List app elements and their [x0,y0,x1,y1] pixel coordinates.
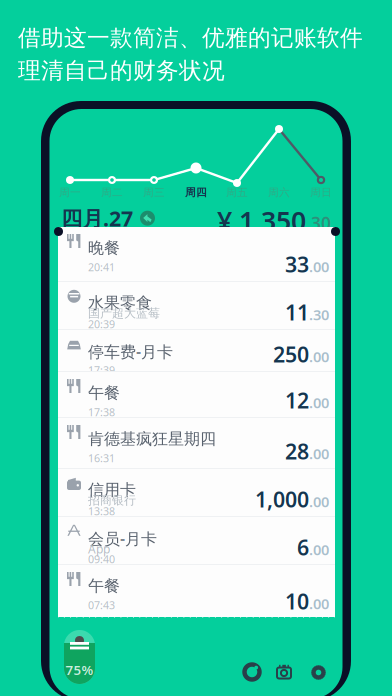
staticText: 16:31 [88,451,115,465]
button[interactable]: 四月.27 [61,204,181,232]
staticText: 75% [65,661,93,679]
staticText: 09:40 [88,552,115,566]
staticText: .00 [309,444,329,463]
staticText: 17:39 [88,363,115,377]
staticText: 信用卡 [88,480,136,500]
staticText: 20:41 [88,260,115,274]
staticText: 10 [285,587,309,615]
staticText: .00 [309,393,329,412]
staticText: 28 [285,437,309,465]
staticText: 周四 [185,186,207,199]
staticText: 理清自己的财务状况 [18,57,225,85]
staticText: 停车费-月卡 [88,341,173,362]
staticText: App [88,541,110,557]
staticText: 1,000 [255,485,309,513]
staticText: 周一 [59,186,81,199]
staticText: 晚餐 [88,238,120,258]
staticText: 招商银行 [88,493,136,508]
staticText: 周五 [226,186,248,199]
staticText: 12 [285,386,309,414]
staticText: 周日 [310,186,332,199]
staticText: 周三 [143,186,165,199]
button[interactable]: 肯德基疯狂星期四 [58,418,335,468]
staticText: .30 [309,305,329,324]
staticText: 会员-月卡 [88,528,157,549]
staticText: .00 [309,492,329,511]
staticText: ¥ 1,350 [217,203,306,238]
button[interactable]: 午餐 [58,565,335,618]
staticText: 13:38 [88,504,115,518]
button[interactable]: 午餐 [58,372,335,417]
staticText: 6 [297,533,309,561]
button[interactable]: 75% [64,630,95,684]
staticText: 07:43 [88,598,115,612]
staticText: .00 [309,594,329,613]
staticText: .00 [309,347,329,366]
staticText: 肯德基疯狂星期四 [88,429,216,449]
button[interactable]: Camera [277,664,293,680]
staticText: 周二 [101,186,123,199]
staticText: 250 [273,340,309,368]
staticText: 20:39 [88,317,115,331]
staticText: 四月.27 [61,204,133,232]
staticText: .00 [309,257,329,276]
staticText: 33 [285,250,309,278]
staticText: .30 [306,211,331,234]
button[interactable]: 晚餐 [58,227,335,281]
staticText: 午餐 [88,576,120,596]
staticText: 借助这一款简洁、优雅的记账软件 [18,24,363,52]
staticText: 水果零食 [88,293,152,313]
staticText: 17:38 [88,405,115,419]
staticText: 国产超大蓝莓 [88,306,160,321]
button[interactable]: Statistics [244,664,260,680]
button[interactable]: 水果零食 [58,282,335,329]
staticText: 11 [285,298,309,326]
staticText: 午餐 [88,383,120,403]
staticText: .00 [309,540,329,559]
staticText: 周六 [268,186,290,199]
button[interactable]: Settings [311,665,326,680]
button[interactable]: 会员-月卡 [58,517,335,564]
button[interactable]: 停车费-月卡 [58,330,335,371]
button[interactable]: 信用卡 [58,469,335,516]
